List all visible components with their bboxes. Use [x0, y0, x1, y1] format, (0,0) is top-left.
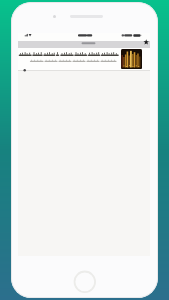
button[interactable] — [142, 38, 151, 47]
button[interactable] — [18, 48, 150, 70]
